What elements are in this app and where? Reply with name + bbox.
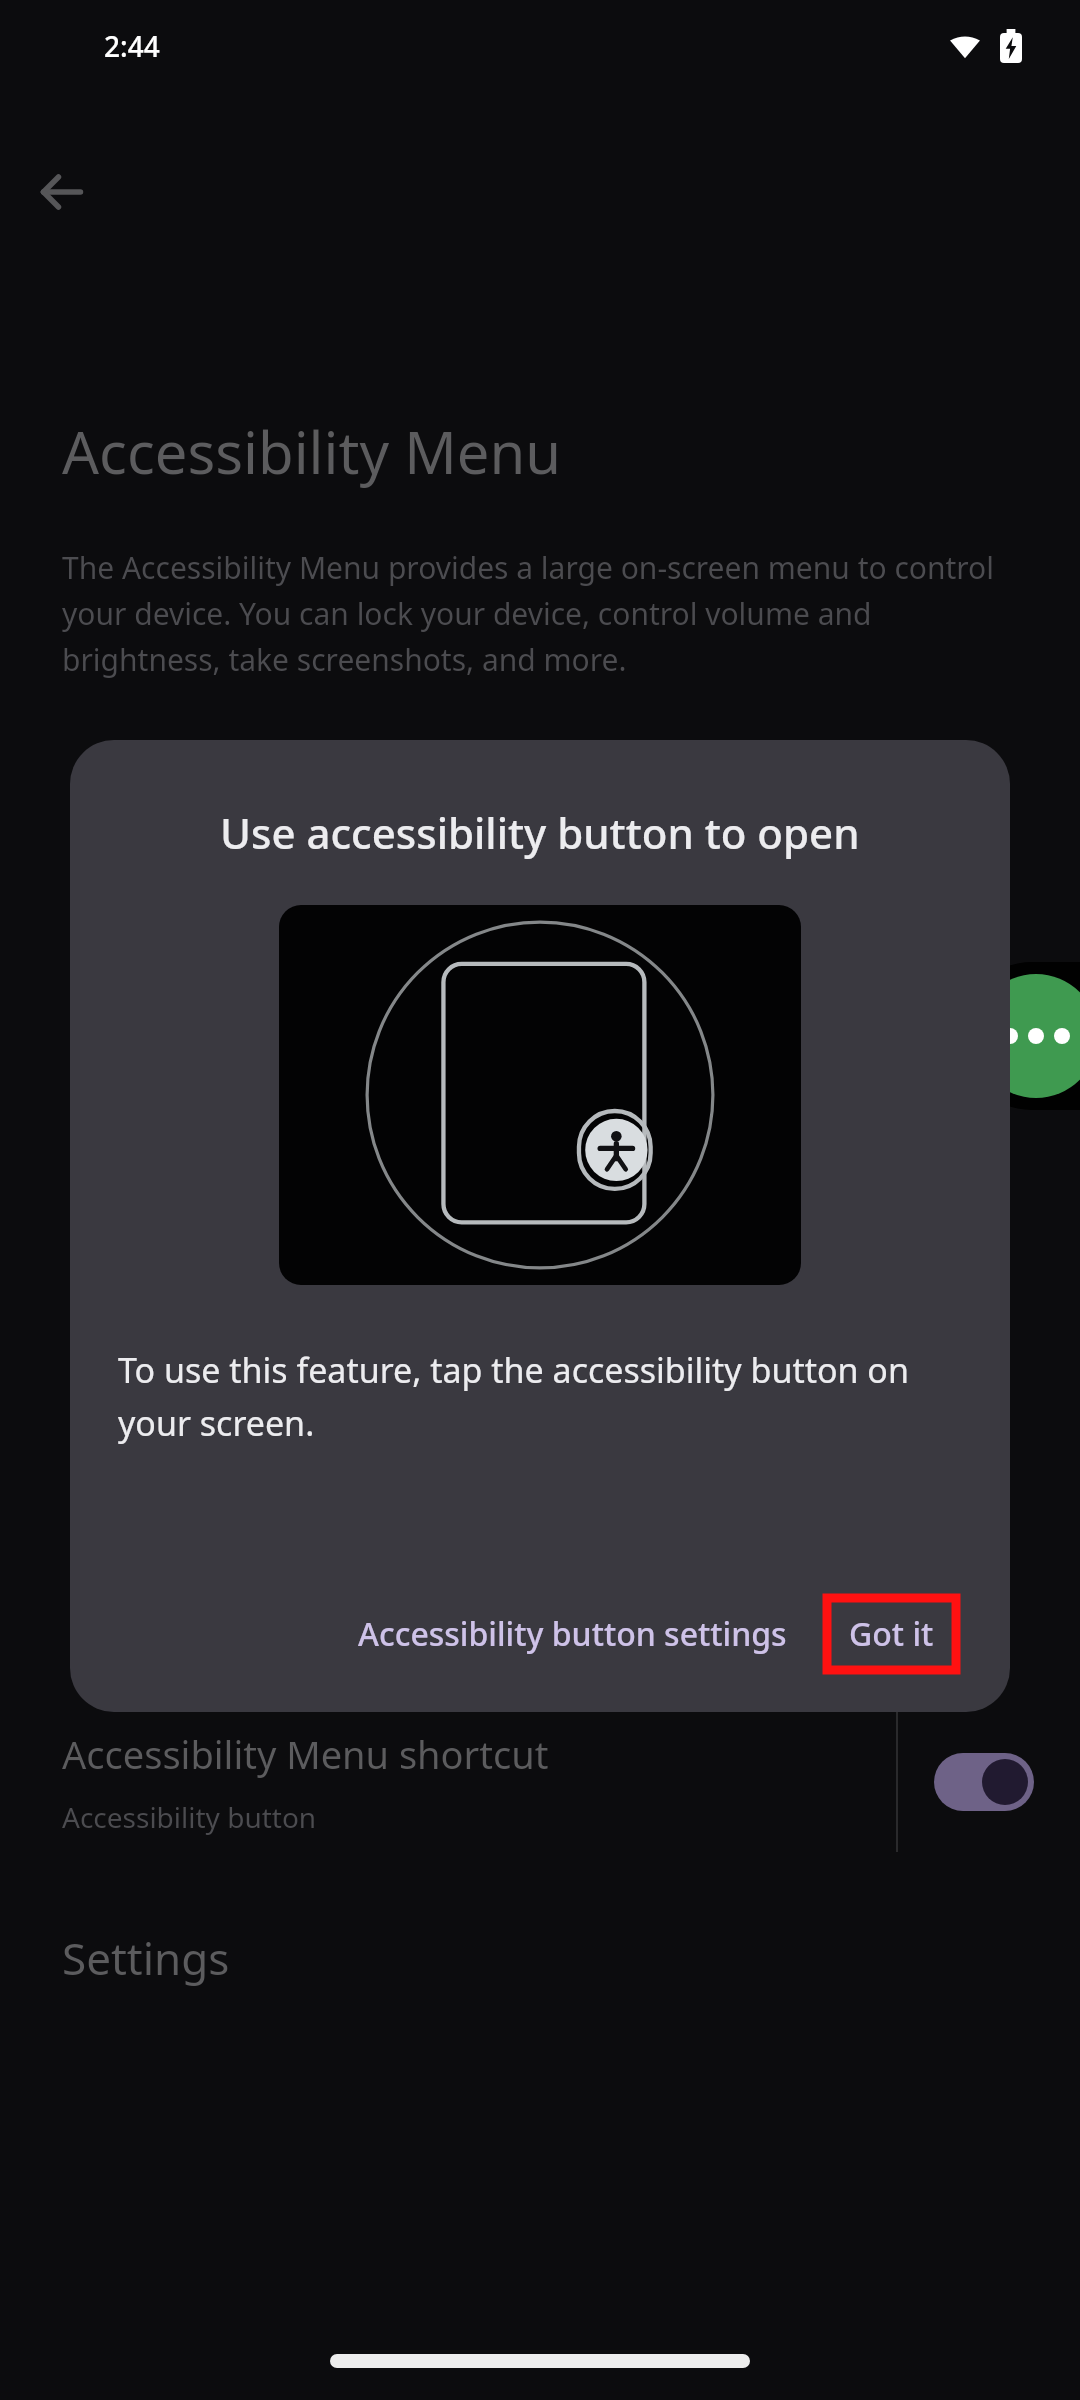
staticText: Got it <box>849 1612 934 1656</box>
staticText: Use accessibility button to open <box>220 804 860 861</box>
staticText: The Accessibility Menu provides a large … <box>62 547 1018 680</box>
staticText: Accessibility Menu shortcut <box>62 1728 549 1780</box>
button[interactable] <box>934 1753 1034 1811</box>
staticText: 2:44 <box>104 27 160 65</box>
staticText: To use this feature, tap the accessibili… <box>118 1347 962 1446</box>
button[interactable]: Accessibility menu <box>974 974 1080 1098</box>
staticText: Accessibility Menu <box>62 412 562 491</box>
button[interactable]: Back <box>22 152 102 232</box>
button[interactable]: Got it <box>825 1596 958 1672</box>
staticText: Settings <box>62 1928 230 1988</box>
button[interactable]: Accessibility button settings <box>344 1600 801 1668</box>
staticText: Accessibility button settings <box>358 1612 787 1656</box>
staticText: Accessibility button <box>62 1798 317 1836</box>
